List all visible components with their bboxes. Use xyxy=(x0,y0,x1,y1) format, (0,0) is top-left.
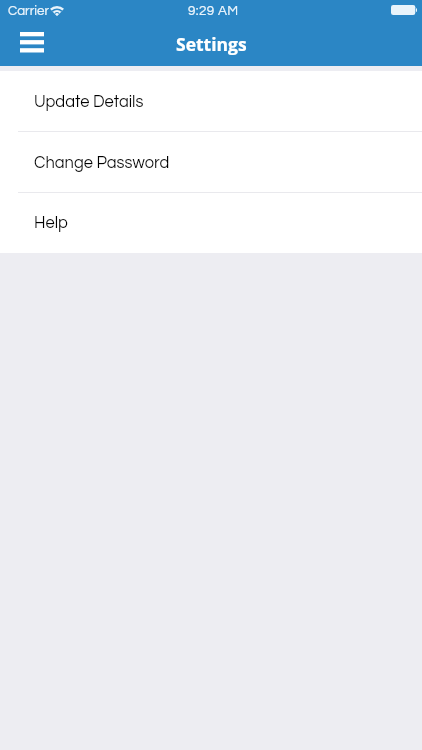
button[interactable]: Open navigation menu xyxy=(10,20,54,64)
staticText: 9:29 AM xyxy=(188,4,239,18)
staticText: Change Password xyxy=(34,154,170,171)
staticText: Settings xyxy=(176,32,247,56)
staticText: Update Details xyxy=(34,93,144,110)
button[interactable]: Update Details xyxy=(0,71,422,132)
staticText: Carrier xyxy=(8,4,49,18)
button[interactable]: Change Password xyxy=(0,132,422,193)
staticText: Help xyxy=(34,214,68,231)
button[interactable]: Help xyxy=(0,192,422,253)
